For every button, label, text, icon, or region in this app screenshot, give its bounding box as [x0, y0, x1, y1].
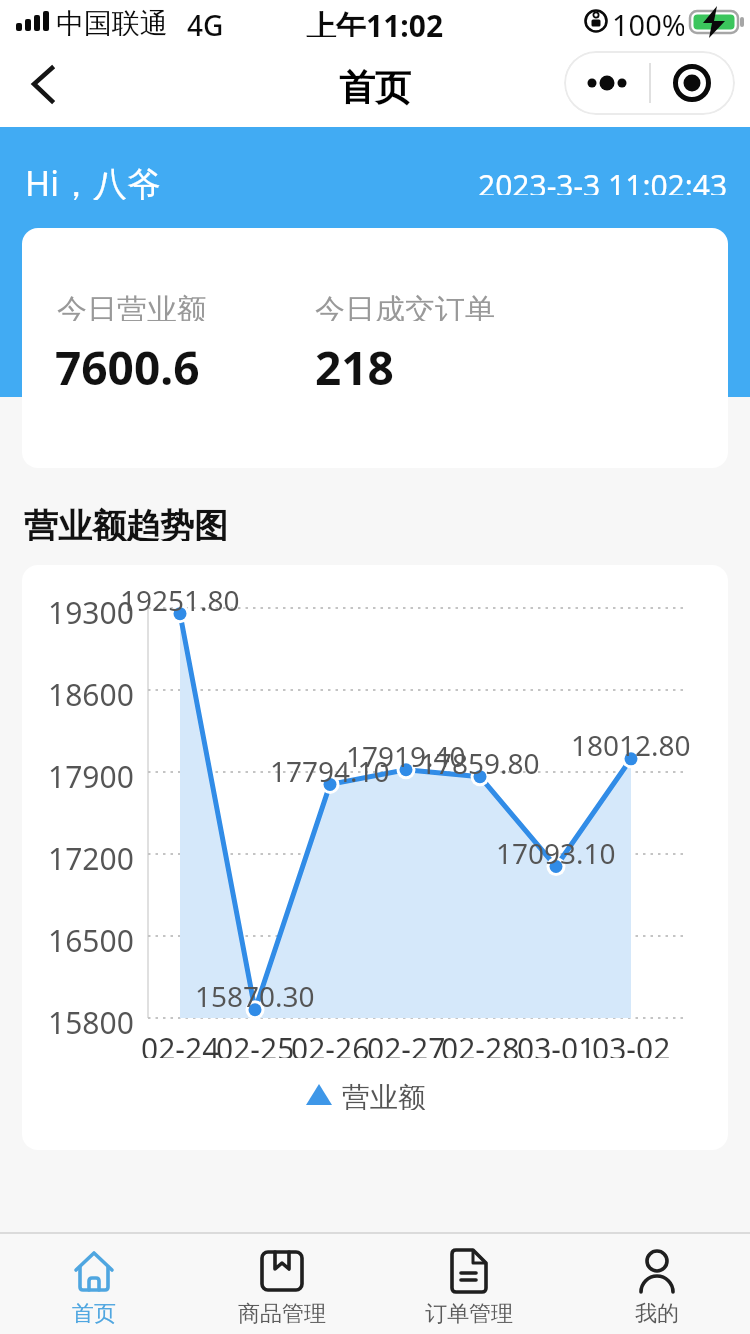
- staticText: 02-24: [141, 1028, 220, 1058]
- staticText: 营业额: [342, 1080, 426, 1110]
- staticText: 商品管理: [238, 1300, 326, 1328]
- staticText: 4G: [187, 6, 224, 36]
- staticText: 18600: [48, 674, 134, 706]
- staticText: 02-27: [367, 1028, 446, 1058]
- staticText: 17859.80: [420, 744, 540, 774]
- staticText: 营业额趋势图: [24, 505, 228, 541]
- button[interactable]: 订单管理: [375, 1233, 562, 1334]
- staticText: 订单管理: [425, 1300, 513, 1328]
- staticText: 19300: [48, 592, 134, 624]
- staticText: 7600.6: [55, 336, 200, 390]
- staticText: 15800: [48, 1002, 134, 1034]
- staticText: 02-26: [291, 1028, 370, 1058]
- button[interactable]: 我的: [563, 1233, 750, 1334]
- staticText: 17794.10: [270, 752, 390, 782]
- staticText: 17900: [48, 756, 134, 788]
- staticText: 中国联通: [56, 6, 168, 36]
- staticText: 今日营业额: [57, 291, 207, 321]
- staticText: 17919.40: [346, 737, 466, 767]
- staticText: 上午11:02: [306, 5, 444, 37]
- staticText: 16500: [48, 920, 134, 952]
- staticText: 02-28: [441, 1028, 520, 1058]
- staticText: 2023-3-3 11:02:43: [478, 165, 728, 195]
- staticText: 100%: [612, 5, 684, 37]
- staticText: 首页: [72, 1300, 116, 1328]
- staticText: 02-25: [216, 1028, 295, 1058]
- button[interactable]: [20, 55, 76, 115]
- button[interactable]: 首页: [0, 1233, 187, 1334]
- staticText: 18012.80: [571, 726, 691, 756]
- staticText: 17093.10: [496, 834, 616, 864]
- staticText: 218: [315, 336, 394, 390]
- staticText: 17200: [48, 838, 134, 870]
- staticText: 03-02: [592, 1028, 671, 1058]
- staticText: 19251.80: [120, 581, 240, 611]
- button[interactable]: [564, 51, 649, 115]
- staticText: Hi，八爷: [25, 160, 161, 200]
- staticText: 我的: [635, 1300, 679, 1328]
- button[interactable]: 商品管理: [188, 1233, 375, 1334]
- button[interactable]: [649, 51, 735, 115]
- staticText: 15870.30: [195, 977, 315, 1007]
- staticText: 今日成交订单: [315, 291, 495, 321]
- staticText: 03-01: [517, 1028, 596, 1058]
- staticText: 首页: [339, 65, 411, 107]
